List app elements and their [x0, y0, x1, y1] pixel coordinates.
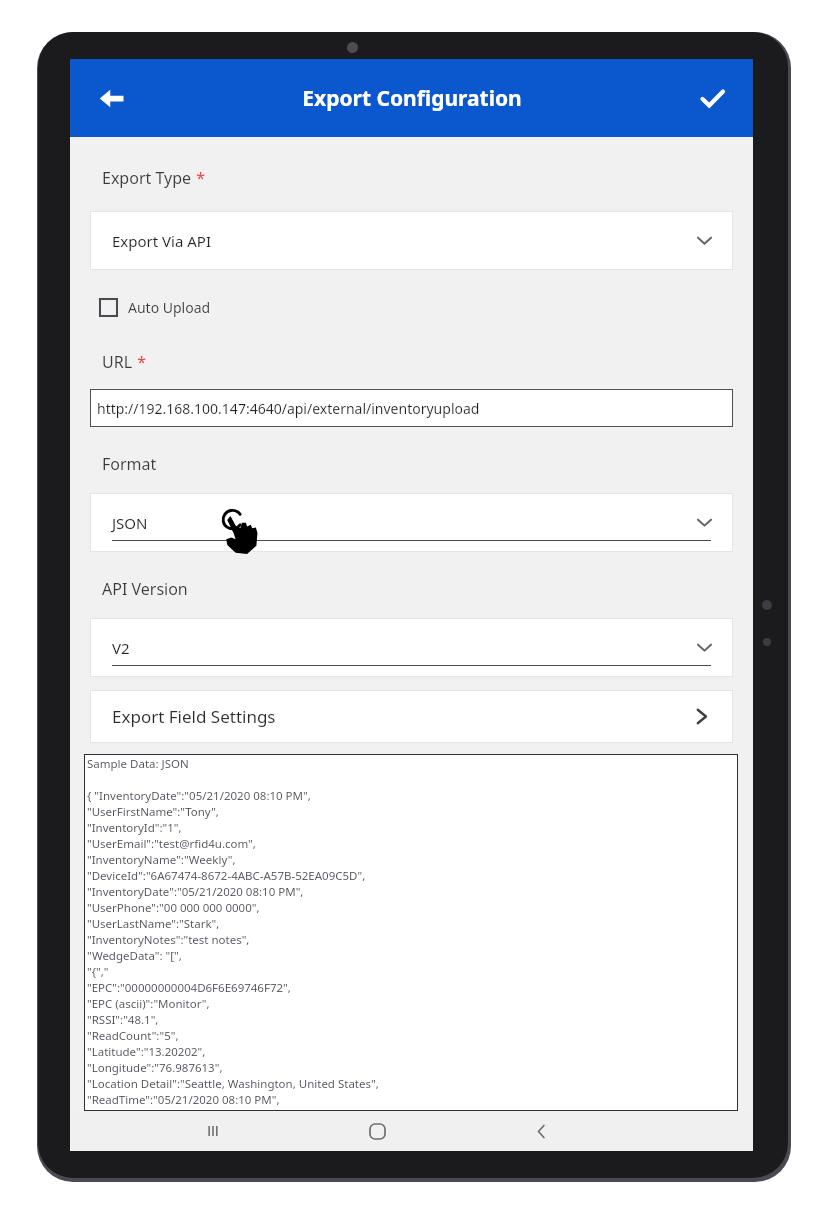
- button[interactable]: JSON: [90, 493, 733, 552]
- button[interactable]: Auto Upload: [100, 290, 211, 324]
- staticText: *: [192, 167, 205, 189]
- staticText: "Longitude":"76.987613",: [87, 1060, 223, 1076]
- staticText: "RSSI":"48.1",: [87, 1012, 159, 1028]
- staticText: "InventoryName":"Weekly",: [87, 852, 236, 868]
- staticText: "ReadTime":"05/21/2020 08:10 PM",: [87, 1092, 280, 1108]
- staticText: "UserFirstName":"Tony",: [87, 804, 219, 820]
- staticText: "DeviceId":"6A67474-8672-4ABC-A57B-52EA0…: [87, 868, 366, 884]
- staticText: Export Field Settings: [112, 705, 276, 728]
- staticText: API Version: [102, 578, 188, 600]
- staticText: "InventoryDate":"05/21/2020 08:10 PM",: [87, 884, 304, 900]
- staticText: Export Via API: [112, 231, 212, 251]
- staticText: JSON: [112, 513, 148, 533]
- staticText: "WedgeData": "[",: [87, 948, 182, 964]
- button[interactable]: Export Field Settings: [90, 690, 733, 743]
- staticText: "EPC (ascii)":"Monitor",: [87, 996, 210, 1012]
- staticText: "Latitude":"13.20202",: [87, 1044, 206, 1060]
- button[interactable]: Save: [687, 73, 737, 123]
- button[interactable]: Back: [459, 1111, 623, 1151]
- staticText: "InventoryId":"1",: [87, 820, 182, 836]
- button[interactable]: V2: [90, 618, 733, 677]
- staticText: "Location Detail":"Seattle, Washington, …: [87, 1076, 379, 1092]
- staticText: URL: [102, 351, 133, 373]
- button[interactable]: Recents: [130, 1111, 295, 1151]
- button[interactable]: Home: [295, 1111, 459, 1151]
- staticText: Export Configuration: [302, 84, 522, 113]
- staticText: Format: [102, 453, 157, 475]
- button[interactable]: Export Via API: [90, 211, 733, 270]
- staticText: { "InventoryDate":"05/21/2020 08:10 PM",: [87, 788, 311, 804]
- staticText: *: [133, 351, 146, 373]
- staticText: "EPC":"00000000004D6F6E69746F72",: [87, 980, 291, 996]
- button[interactable]: http://192.168.100.147:4640/api/external…: [90, 389, 733, 427]
- staticText: Export Type: [102, 167, 192, 189]
- staticText: Auto Upload: [128, 298, 211, 317]
- staticText: "UserPhone":"00 000 000 0000",: [87, 900, 260, 916]
- staticText: Sample Data: JSON: [87, 756, 189, 772]
- staticText: "{",": [87, 964, 109, 980]
- staticText: "ReadCount":"5",: [87, 1028, 179, 1044]
- staticText: V2: [112, 638, 130, 658]
- staticText: "UserEmail":"test@rfid4u.com",: [87, 836, 256, 852]
- staticText: http://192.168.100.147:4640/api/external…: [97, 399, 480, 418]
- button[interactable]: Sample Data: JSON: [84, 754, 738, 1111]
- staticText: "UserLastName":"Stark",: [87, 916, 220, 932]
- staticText: "InventoryNotes":"test notes",: [87, 932, 250, 948]
- button[interactable]: Back: [86, 73, 136, 123]
